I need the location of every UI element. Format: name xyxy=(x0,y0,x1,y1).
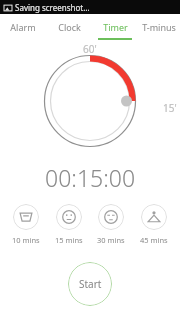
staticText: 30 mins xyxy=(97,235,125,245)
button[interactable]: Alarm xyxy=(0,14,46,40)
button[interactable]: 45 mins xyxy=(138,203,170,246)
staticText: 45 mins xyxy=(140,235,168,245)
staticText: Clock xyxy=(58,21,81,33)
staticText: 15 mins xyxy=(55,235,83,245)
staticText: Saving screenshot… xyxy=(15,2,90,13)
staticText: Alarm xyxy=(10,21,36,33)
button[interactable]: 30 mins xyxy=(95,203,127,246)
staticText: 10 mins xyxy=(12,235,40,245)
button[interactable]: Timer xyxy=(92,14,138,40)
button[interactable]: Start xyxy=(68,262,112,306)
staticText: Start xyxy=(79,277,102,291)
button[interactable]: 15 mins xyxy=(53,203,85,246)
button[interactable]: 10 mins xyxy=(10,203,42,246)
staticText: 00:15:00 xyxy=(45,162,136,193)
staticText: 15' xyxy=(163,101,177,115)
staticText: Timer xyxy=(103,21,128,33)
button[interactable]: Clock xyxy=(46,14,92,40)
button[interactable]: Timer dial, 15 minutes xyxy=(43,54,137,148)
staticText: 60' xyxy=(83,42,97,56)
staticText: T-minus xyxy=(142,21,176,33)
button[interactable]: T-minus xyxy=(138,14,180,40)
